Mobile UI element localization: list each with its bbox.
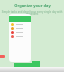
staticText: Simple tasks and clear focus every singl…	[1, 10, 63, 16]
button[interactable]	[9, 34, 31, 38]
button[interactable]: Alert	[0, 55, 5, 58]
button[interactable]	[9, 22, 31, 26]
button[interactable]	[9, 30, 31, 34]
staticText: Organize your day	[14, 3, 51, 8]
button[interactable]	[9, 26, 31, 30]
